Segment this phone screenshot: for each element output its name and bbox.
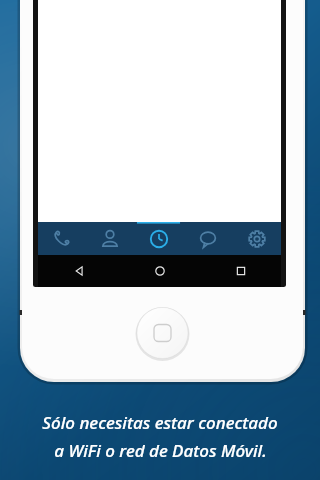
button[interactable]: Settings [232, 222, 281, 255]
staticText: Sólo necesitas estar conectado [42, 411, 278, 434]
button[interactable]: Recents [134, 222, 183, 255]
staticText: a WiFi o red de Datos Móvil. [54, 439, 267, 462]
button[interactable]: Back [38, 255, 119, 287]
button[interactable]: Home [119, 255, 200, 287]
button[interactable]: Contacts [86, 222, 134, 255]
button[interactable]: Recent apps [200, 255, 281, 287]
button[interactable]: Messages [183, 222, 232, 255]
button[interactable]: Calls [38, 222, 86, 255]
